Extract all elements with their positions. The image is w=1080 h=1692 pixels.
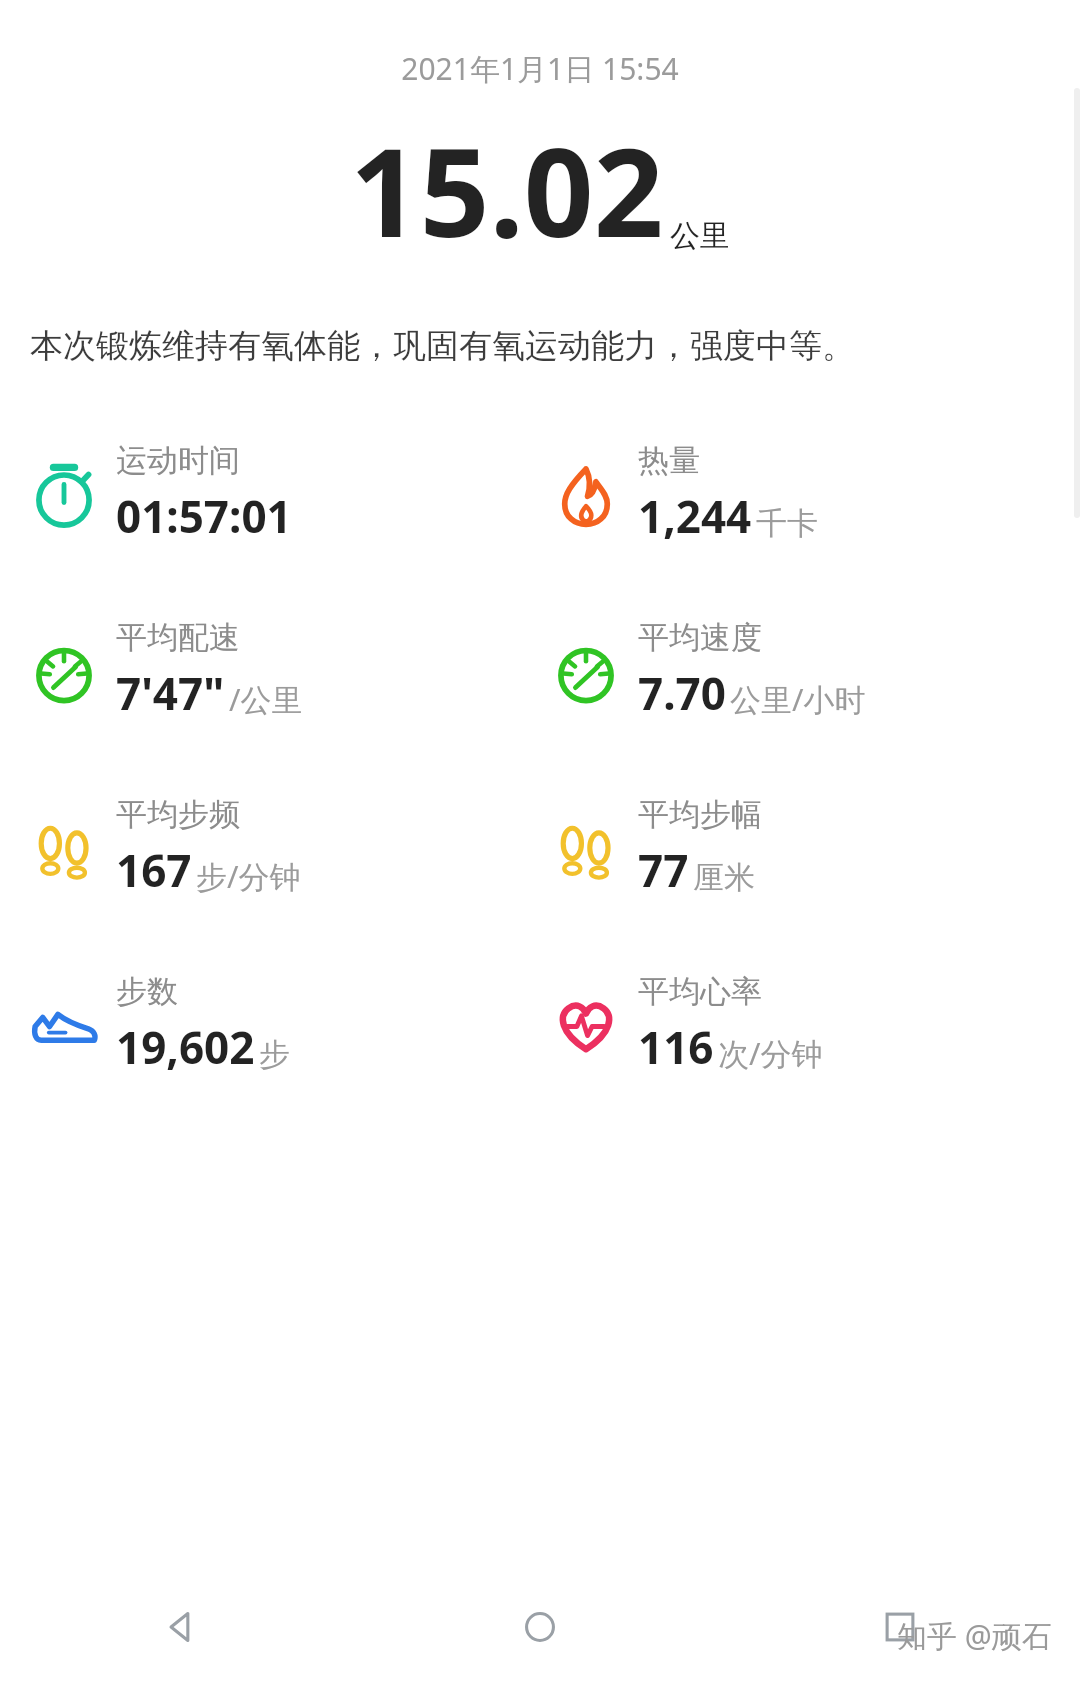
button[interactable]: Recents (720, 1562, 1080, 1692)
button[interactable]: Home (360, 1562, 720, 1692)
staticText: 7.70 (638, 663, 726, 723)
staticText: 步/分钟 (196, 855, 301, 897)
staticText: 77 (638, 840, 689, 900)
staticText: 平均心率 (638, 972, 762, 1011)
button[interactable]: Average heart rate (548, 972, 1080, 1077)
staticText: 2021年1月1日 15:54 (0, 48, 1080, 89)
staticText: 热量 (638, 441, 700, 480)
staticText: 平均步频 (116, 795, 240, 834)
staticText: 运动时间 (116, 441, 240, 480)
button[interactable]: Back (0, 1562, 360, 1692)
staticText: 平均配速 (116, 618, 240, 657)
button[interactable]: Average speed (548, 618, 1080, 723)
button[interactable]: Average pace (26, 618, 540, 723)
staticText: 次/分钟 (718, 1032, 823, 1074)
staticText: 116 (638, 1017, 714, 1077)
staticText: 千卡 (756, 504, 818, 543)
staticText: 平均速度 (638, 618, 762, 657)
staticText: 7'47" (116, 663, 225, 723)
staticText: 步 (259, 1035, 290, 1074)
staticText: 公里 (670, 217, 730, 255)
staticText: 厘米 (693, 858, 755, 897)
staticText: 步数 (116, 972, 178, 1011)
button[interactable]: Average stride (548, 795, 1080, 900)
staticText: 1,244 (638, 486, 752, 546)
staticText: 平均步幅 (638, 795, 762, 834)
button[interactable]: Duration (26, 441, 540, 546)
staticText: 19,602 (116, 1017, 255, 1077)
staticText: 167 (116, 840, 192, 900)
staticText: 知乎 @顽石 (897, 1615, 1052, 1656)
staticText: 15.02 (350, 107, 664, 273)
staticText: /公里 (229, 678, 303, 720)
staticText: 公里/小时 (730, 678, 866, 720)
staticText: 本次锻炼维持有氧体能，巩固有氧运动能力，强度中等。 (30, 325, 855, 367)
button[interactable]: Steps (26, 972, 540, 1077)
button[interactable]: Calories (548, 441, 1080, 546)
staticText: 01:57:01 (116, 486, 292, 546)
button[interactable]: Average cadence (26, 795, 540, 900)
